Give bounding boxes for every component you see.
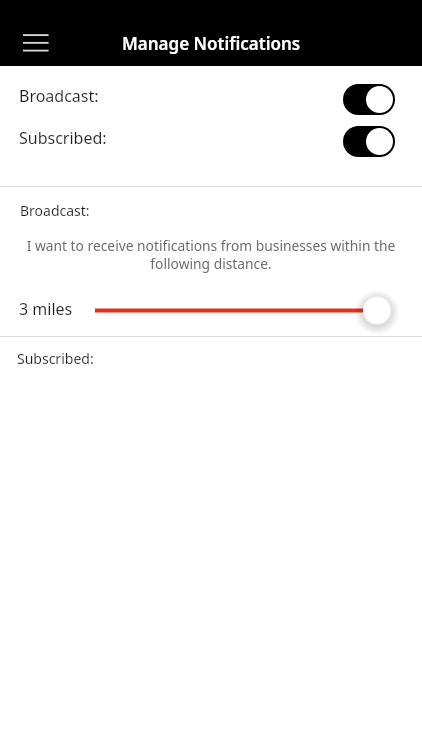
staticText: Subscribed: <box>17 349 94 368</box>
button[interactable]: Broadcast: <box>0 78 422 120</box>
staticText: Broadcast: <box>19 85 99 107</box>
button[interactable]: Broadcast: switch, on <box>343 84 395 115</box>
staticText: Broadcast: <box>20 201 90 220</box>
staticText: Subscribed: <box>19 127 107 149</box>
staticText: I want to receive notifications from bus… <box>13 236 409 273</box>
button[interactable]: Distance slider <box>95 291 422 331</box>
staticText: Manage Notifications <box>122 32 301 55</box>
button[interactable]: Subscribed: <box>0 120 422 162</box>
button[interactable]: Subscribed: switch, on <box>343 126 395 157</box>
staticText: 3 miles <box>19 298 73 320</box>
button[interactable]: Menu <box>12 19 60 67</box>
